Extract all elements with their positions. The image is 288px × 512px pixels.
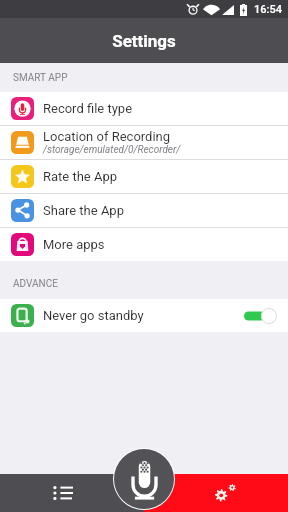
button[interactable]: More apps	[0, 228, 288, 261]
staticText: Rate the App	[43, 169, 118, 184]
button[interactable]: Recordings list	[0, 474, 144, 512]
staticText: 16:54	[254, 3, 282, 16]
button[interactable]: Settings	[144, 474, 288, 512]
button[interactable]: Rate the App	[0, 160, 288, 193]
staticText: More apps	[43, 237, 105, 252]
button[interactable]: Location of Recording	[0, 126, 288, 159]
staticText: Settings	[112, 31, 176, 51]
staticText: Never go standby	[43, 308, 144, 323]
staticText: ADVANCE	[13, 278, 58, 290]
staticText: SMART APP	[13, 72, 68, 84]
button[interactable]: Record file type	[0, 92, 288, 125]
button[interactable]: Never go standby toggle	[243, 307, 278, 325]
staticText: Share the App	[43, 203, 124, 218]
button[interactable]: Never go standby	[0, 299, 288, 332]
staticText: Record file type	[43, 101, 133, 116]
staticText: Location of Recording	[43, 129, 171, 144]
button[interactable]: Record	[114, 449, 174, 509]
staticText: /storage/emulated/0/Recorder/	[43, 144, 181, 156]
button[interactable]: Share the App	[0, 194, 288, 227]
